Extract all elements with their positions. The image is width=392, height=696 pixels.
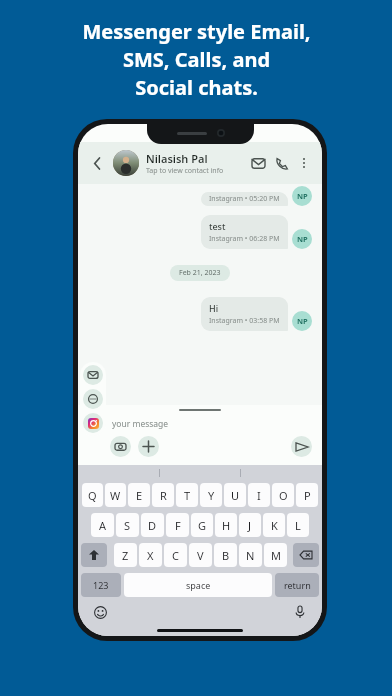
staticText: X — [147, 548, 154, 563]
button[interactable]: K — [263, 513, 285, 537]
button[interactable]: P — [296, 483, 318, 507]
button[interactable]: More options — [294, 153, 314, 173]
button[interactable]: Shift — [81, 543, 107, 567]
staticText: test — [209, 220, 226, 232]
button[interactable]: A — [91, 513, 114, 537]
button[interactable]: H — [215, 513, 237, 537]
staticText: 123 — [93, 579, 109, 591]
button[interactable]: Z — [114, 543, 137, 567]
button[interactable]: J — [239, 513, 261, 537]
button[interactable]: space — [124, 573, 272, 597]
staticText: Hi — [209, 302, 219, 314]
staticText: NP — [297, 234, 308, 244]
staticText: A — [99, 518, 107, 533]
staticText: L — [295, 518, 301, 533]
button[interactable]: 123 — [81, 573, 121, 597]
button[interactable]: D — [141, 513, 164, 537]
button[interactable]: X — [139, 543, 162, 567]
button[interactable]: M — [264, 543, 287, 567]
button[interactable]: F — [166, 513, 189, 537]
staticText: H — [222, 518, 231, 533]
staticText: Y — [208, 488, 215, 503]
staticText: Instagram • 03:58 PM — [209, 316, 280, 326]
staticText: T — [184, 488, 191, 503]
staticText: Tap to view contact info — [146, 166, 224, 176]
button[interactable]: R — [152, 483, 174, 507]
button[interactable]: Call — [270, 151, 294, 175]
staticText: space — [186, 579, 211, 591]
staticText: J — [248, 518, 252, 533]
button[interactable]: Add attachment — [138, 436, 159, 457]
staticText: Nilasish Pal — [146, 151, 208, 166]
button[interactable]: Y — [200, 483, 222, 507]
staticText: E — [136, 488, 143, 503]
button[interactable]: SMS channel — [83, 389, 103, 409]
button[interactable]: Emoji — [90, 602, 110, 622]
staticText: I — [257, 488, 261, 503]
staticText: U — [231, 488, 240, 503]
button[interactable]: I — [248, 483, 270, 507]
staticText: K — [271, 518, 278, 533]
button[interactable]: O — [272, 483, 294, 507]
staticText: return — [284, 579, 311, 591]
staticText: W — [110, 488, 121, 503]
button[interactable]: E — [128, 483, 150, 507]
button[interactable]: Nilasish Pal — [146, 151, 246, 176]
staticText: S — [124, 518, 131, 533]
button[interactable]: Instagram • 05:20 PM — [201, 192, 288, 206]
staticText: Z — [122, 548, 129, 563]
staticText: G — [198, 518, 207, 533]
staticText: Q — [88, 488, 97, 503]
button[interactable]: Back — [86, 152, 108, 174]
staticText: NP — [297, 191, 308, 201]
button[interactable]: Send — [291, 436, 312, 457]
button[interactable]: Hi — [201, 297, 288, 331]
button[interactable]: S — [116, 513, 139, 537]
button[interactable]: return — [275, 573, 319, 597]
staticText: R — [160, 488, 167, 503]
staticText: Instagram • 05:20 PM — [209, 194, 280, 204]
button[interactable]: B — [214, 543, 237, 567]
button[interactable]: N — [239, 543, 262, 567]
button[interactable]: Email channel — [83, 365, 103, 385]
staticText: C — [172, 548, 179, 563]
button[interactable]: U — [224, 483, 246, 507]
button[interactable]: Backspace — [293, 543, 319, 567]
button[interactable]: Voice input — [290, 602, 310, 622]
staticText: D — [148, 518, 157, 533]
button[interactable]: G — [191, 513, 213, 537]
staticText: Feb 21, 2023 — [179, 268, 221, 278]
staticText: M — [271, 548, 281, 563]
button[interactable]: T — [176, 483, 198, 507]
button[interactable]: C — [164, 543, 187, 567]
staticText: O — [279, 488, 288, 503]
staticText: B — [222, 548, 230, 563]
staticText: F — [175, 518, 181, 533]
button[interactable]: V — [189, 543, 212, 567]
staticText: N — [246, 548, 255, 563]
button[interactable]: W — [105, 483, 126, 507]
button[interactable]: Camera — [110, 436, 131, 457]
button[interactable]: Instagram channel — [83, 413, 103, 433]
staticText: Messenger style Email, SMS, Calls, and S… — [82, 18, 311, 101]
staticText: your message — [112, 418, 169, 430]
button[interactable]: Q — [82, 483, 103, 507]
staticText: P — [304, 488, 311, 503]
button[interactable]: test — [201, 215, 288, 249]
button[interactable]: Email — [246, 151, 270, 175]
staticText: V — [197, 548, 204, 563]
staticText: Instagram • 06:28 PM — [209, 234, 280, 244]
button[interactable]: L — [287, 513, 309, 537]
staticText: NP — [297, 316, 308, 326]
